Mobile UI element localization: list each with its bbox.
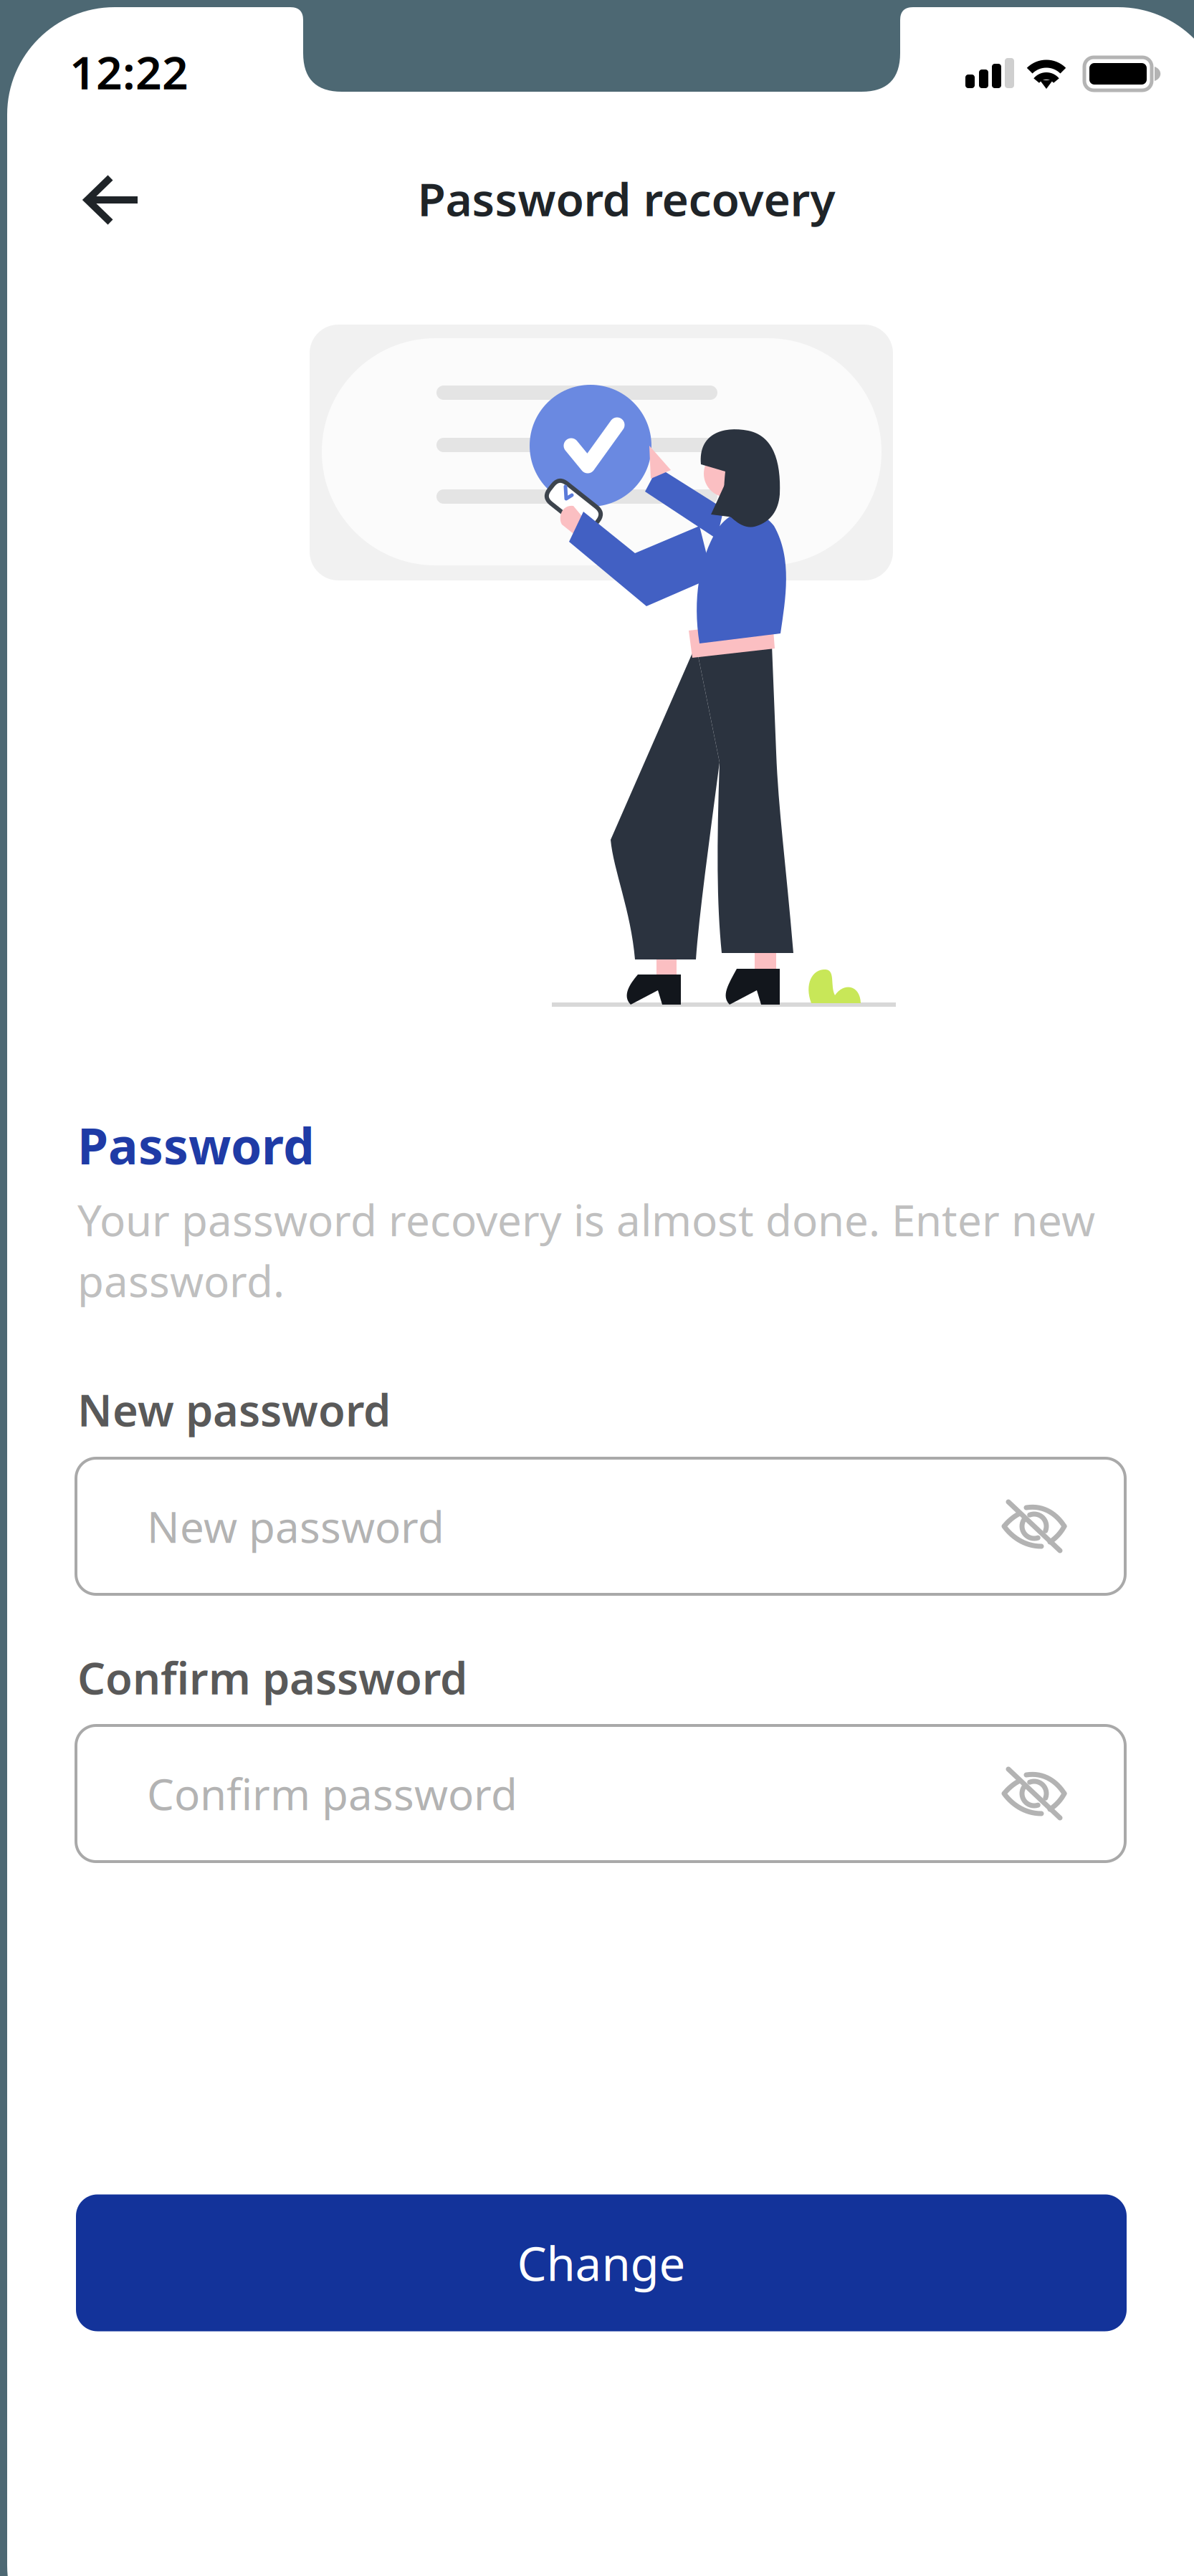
- button[interactable]: Confirm password: [76, 1725, 1125, 1862]
- button[interactable]: New password: [76, 1458, 1125, 1594]
- staticText: Your password recovery is almost done. E…: [77, 1191, 1095, 1248]
- staticText: Confirm password: [77, 1648, 467, 1707]
- staticText: New password: [77, 1380, 391, 1439]
- staticText: Confirm password: [147, 1765, 517, 1822]
- button[interactable]: Change: [76, 2194, 1127, 2331]
- staticText: 12:22: [70, 41, 188, 102]
- staticText: Password recovery: [417, 168, 835, 229]
- staticText: New password: [147, 1498, 444, 1555]
- staticText: Change: [517, 2232, 686, 2294]
- staticText: password.: [77, 1252, 285, 1309]
- staticText: Password: [77, 1112, 315, 1178]
- button[interactable]: Back: [69, 158, 159, 241]
